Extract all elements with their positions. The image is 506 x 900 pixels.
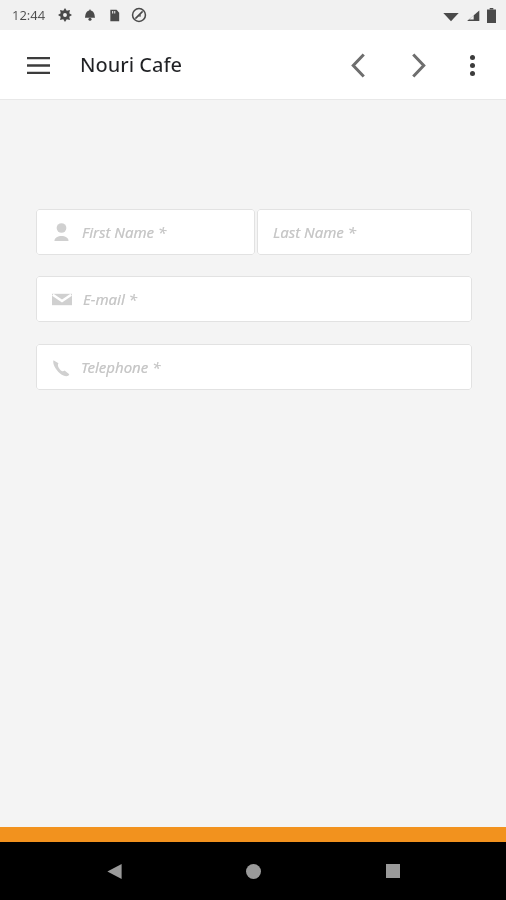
button[interactable]: Open navigation menu [16, 43, 60, 87]
staticText: Last Name * [273, 222, 356, 242]
button[interactable]: First Name * [36, 209, 255, 255]
button[interactable]: Recent apps [367, 845, 419, 897]
button[interactable]: Last Name * [257, 209, 472, 255]
button[interactable]: Forward [396, 43, 440, 87]
staticText: Telephone * [81, 357, 161, 377]
staticText: 12:44 [12, 6, 46, 24]
button[interactable]: E-mail * [36, 276, 472, 322]
button[interactable]: Back [88, 845, 140, 897]
staticText: E-mail * [83, 289, 137, 309]
staticText: Nouri Cafe [80, 51, 183, 78]
button[interactable]: Back [336, 43, 380, 87]
button[interactable]: Telephone * [36, 344, 472, 390]
button[interactable]: Home [227, 845, 279, 897]
staticText: First Name * [82, 222, 167, 242]
button[interactable]: More options [450, 43, 494, 87]
